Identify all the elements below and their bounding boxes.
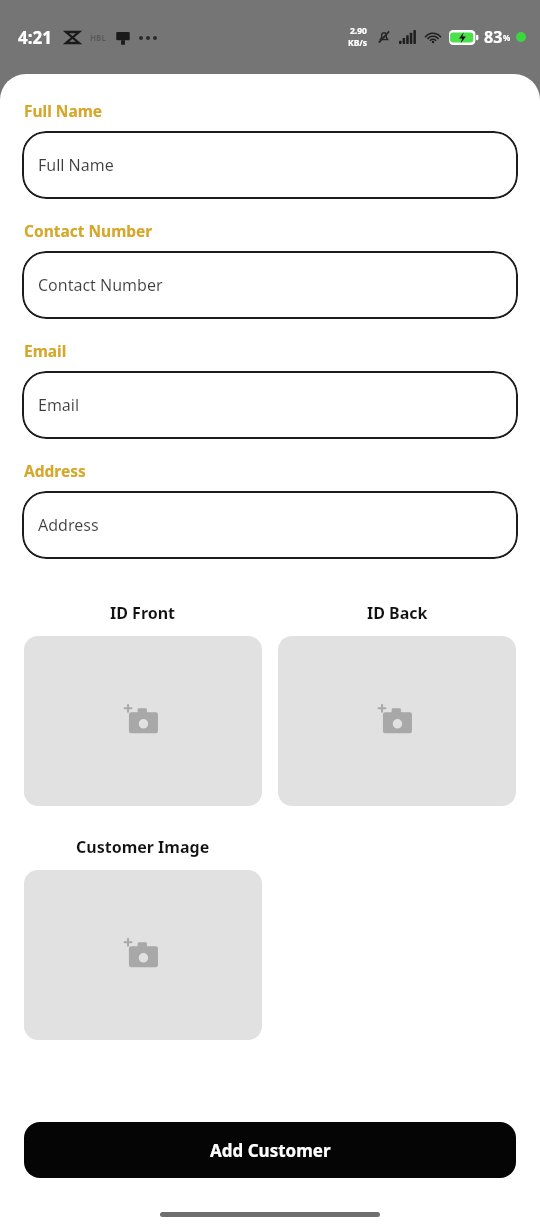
staticText: KB/s (348, 37, 368, 49)
button[interactable]: Address (22, 491, 518, 559)
staticText: Customer Image (76, 836, 210, 858)
staticText: 2.90 (350, 25, 367, 37)
staticText: % (503, 32, 511, 43)
button[interactable]: Email (22, 371, 518, 439)
button[interactable]: Contact Number (22, 251, 518, 319)
staticText: 4:21 (18, 26, 52, 49)
staticText: Email (38, 394, 80, 416)
staticText: HBL (90, 32, 106, 43)
staticText: Add Customer (210, 1139, 331, 1162)
button[interactable]: Add photo for ID Back (278, 636, 516, 806)
staticText: 83 (484, 26, 503, 48)
staticText: Contact Number (38, 274, 163, 296)
button[interactable]: Add photo for Customer Image (24, 870, 262, 1040)
staticText: ID Back (367, 602, 428, 624)
staticText: Contact Number (24, 220, 153, 241)
staticText: ID Front (110, 602, 176, 624)
button[interactable]: Add Customer (24, 1122, 516, 1178)
staticText: Address (24, 460, 86, 481)
button[interactable]: Full Name (22, 131, 518, 199)
staticText: Email (24, 340, 67, 361)
staticText: Full Name (24, 100, 103, 121)
staticText: Address (38, 514, 99, 536)
button[interactable]: Add photo for ID Front (24, 636, 262, 806)
staticText: Full Name (38, 154, 114, 176)
